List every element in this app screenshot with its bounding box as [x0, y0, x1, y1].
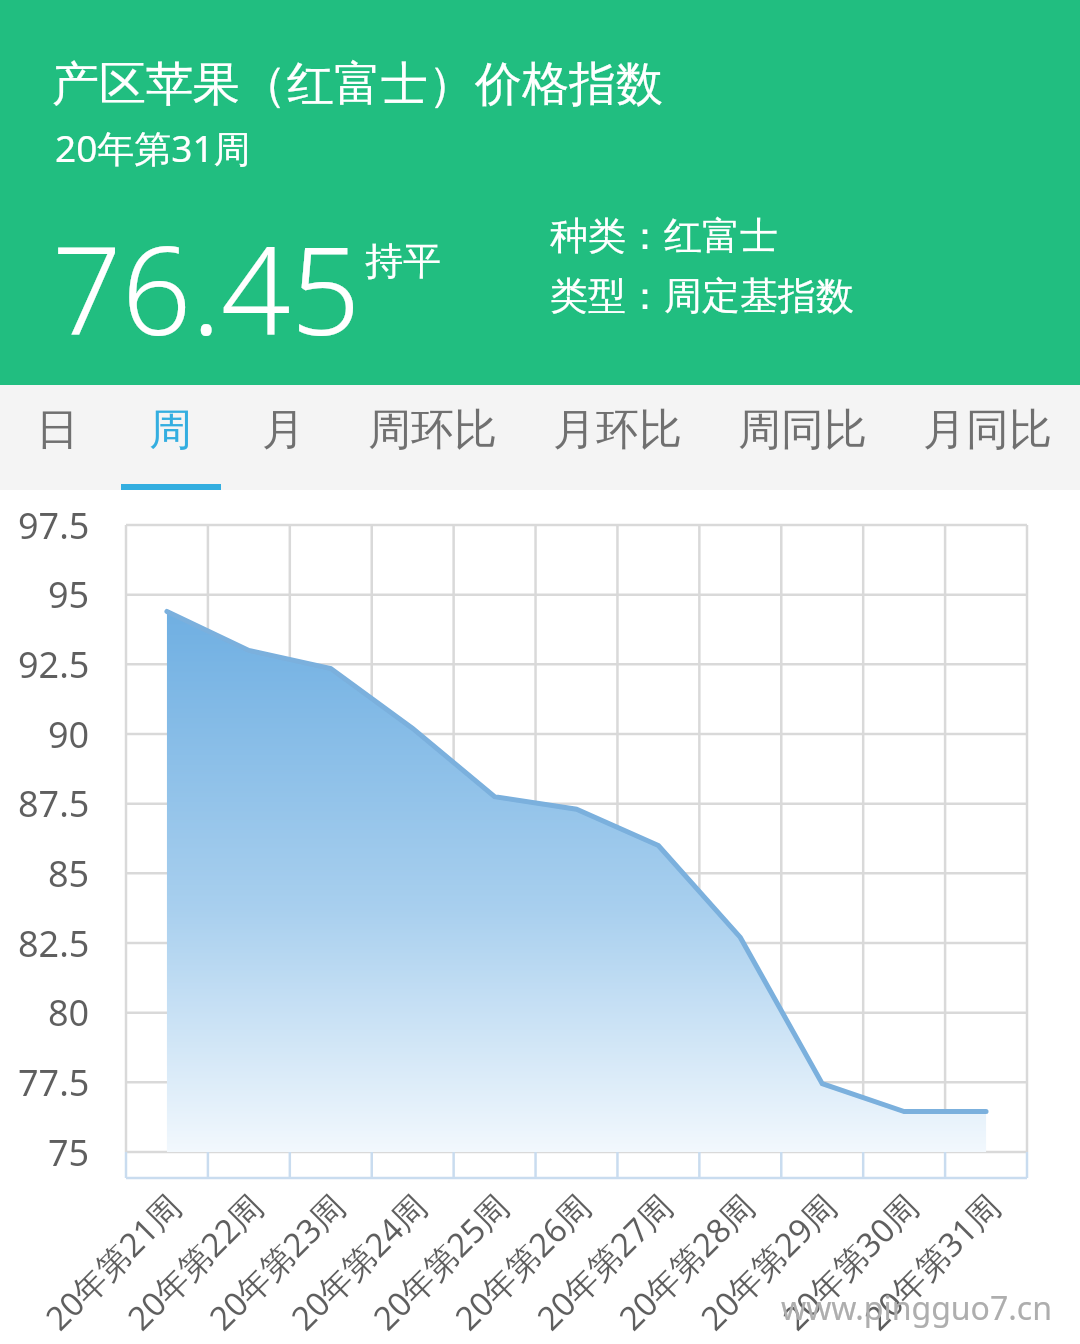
button[interactable]: 周 — [114, 385, 227, 490]
button[interactable]: 月环比 — [525, 385, 710, 490]
staticText: 日 — [36, 403, 79, 457]
button[interactable]: 月 — [227, 385, 340, 490]
staticText: 种类：红富士 — [550, 212, 778, 260]
button[interactable]: 月同比 — [895, 385, 1080, 490]
staticText: 月同比 — [923, 403, 1052, 457]
button[interactable]: 日 — [0, 385, 114, 490]
staticText: 76.45 — [52, 205, 361, 371]
button[interactable]: 周环比 — [340, 385, 525, 490]
staticText: 周环比 — [368, 403, 497, 457]
staticText: 周 — [149, 403, 192, 457]
staticText: 周同比 — [738, 403, 867, 457]
staticText: 持平 — [365, 237, 441, 285]
staticText: 产区苹果（红富士）价格指数 — [52, 55, 663, 114]
button[interactable]: 周同比 — [710, 385, 895, 490]
staticText: 20年第31周 — [55, 122, 251, 173]
staticText: 类型：周定基指数 — [550, 272, 854, 320]
staticText: 月环比 — [553, 403, 682, 457]
staticText: 月 — [262, 403, 305, 457]
